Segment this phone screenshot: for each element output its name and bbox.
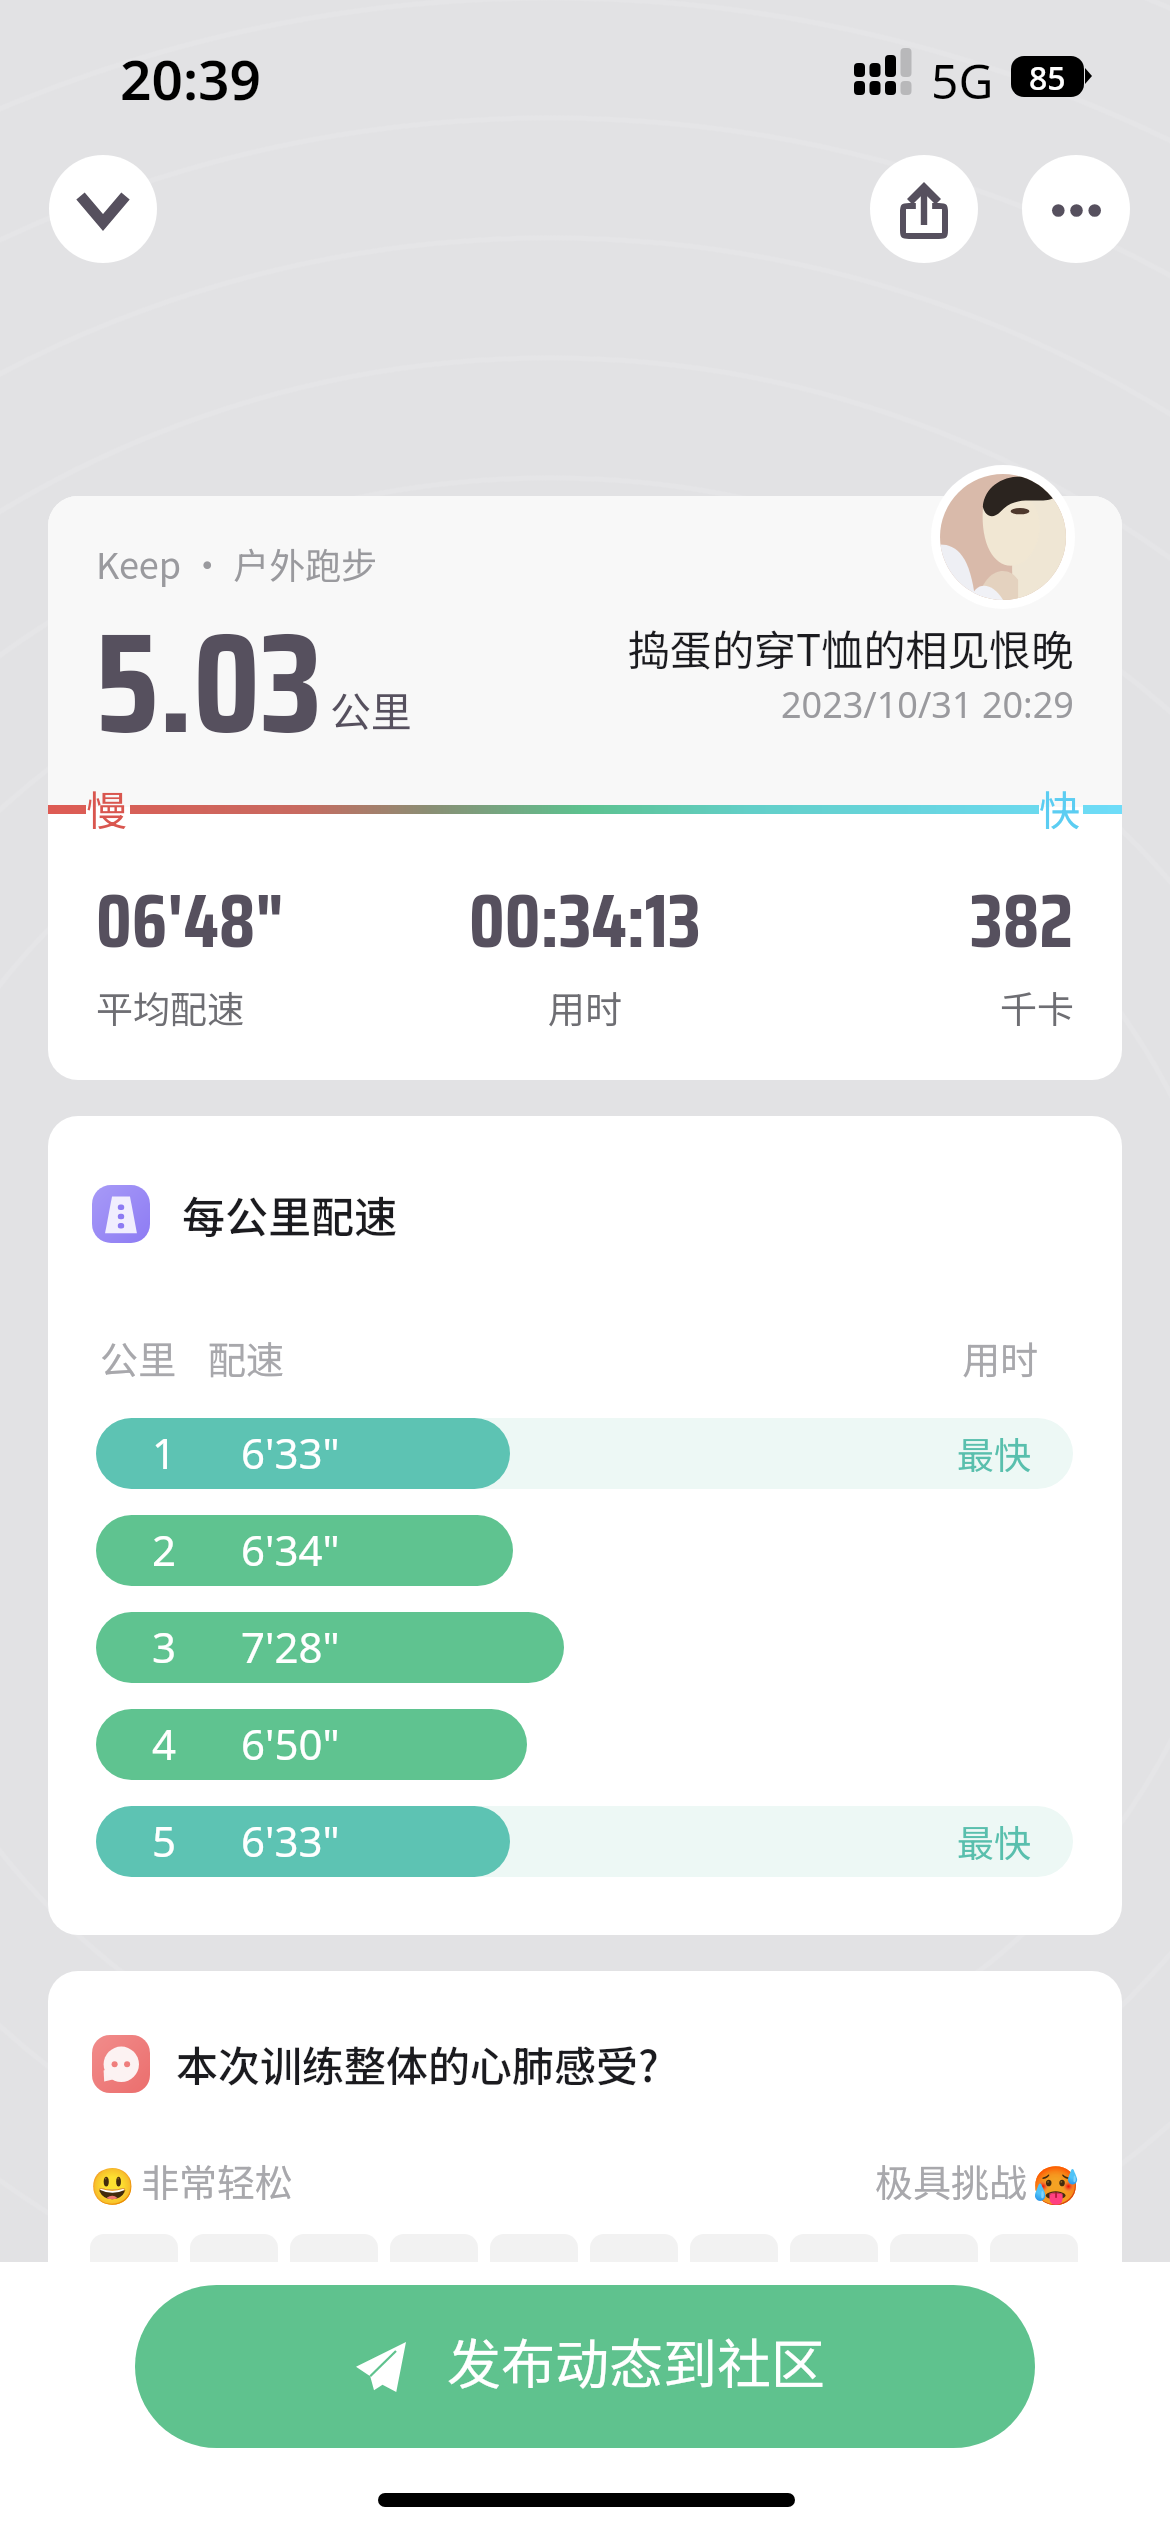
staticText: 快: [1039, 778, 1080, 837]
staticText: 2: [152, 1521, 177, 1578]
staticText: 7'28": [241, 1618, 340, 1675]
staticText: 捣蛋的穿T恤的相见恨晚: [628, 617, 1074, 678]
button[interactable]: [290, 2234, 378, 2294]
button[interactable]: More options: [1022, 155, 1130, 263]
staticText: 5.03: [95, 572, 322, 794]
staticText: 1: [152, 1424, 177, 1481]
button[interactable]: [690, 2234, 778, 2294]
button[interactable]: Collapse: [49, 155, 157, 263]
button[interactable]: [190, 2234, 278, 2294]
button[interactable]: 发布动态到社区: [135, 2285, 1035, 2448]
staticText: 配速: [208, 1330, 285, 1385]
staticText: 发布动态到社区: [447, 2321, 825, 2399]
staticText: 382: [970, 862, 1074, 980]
staticText: 慢: [86, 778, 127, 837]
staticText: 🥵: [1032, 2164, 1080, 2209]
staticText: 用时: [548, 980, 622, 1034]
staticText: Keep · 户外跑步: [96, 537, 378, 589]
staticText: 最快: [957, 1814, 1031, 1868]
button[interactable]: [590, 2234, 678, 2294]
staticText: 公里: [330, 679, 412, 738]
staticText: 千卡: [1000, 980, 1074, 1034]
button[interactable]: [890, 2234, 978, 2294]
staticText: 00:34:13: [469, 862, 701, 980]
staticText: 每公里配速: [182, 1183, 397, 1245]
staticText: 极具挑战: [875, 2153, 1028, 2208]
staticText: 最快: [957, 1426, 1031, 1480]
staticText: 2023/10/31 20:29: [781, 680, 1074, 729]
staticText: 😃: [90, 2166, 135, 2208]
staticText: 5: [152, 1812, 177, 1869]
staticText: 06'48": [96, 862, 284, 980]
staticText: 85: [1029, 56, 1066, 97]
button[interactable]: [490, 2234, 578, 2294]
button[interactable]: User avatar: [931, 465, 1075, 609]
staticText: 用时: [962, 1330, 1039, 1385]
staticText: 平均配速: [96, 980, 244, 1034]
button[interactable]: [790, 2234, 878, 2294]
staticText: 3: [152, 1618, 177, 1675]
staticText: 6'33": [241, 1812, 340, 1869]
staticText: 本次训练整体的心肺感受?: [176, 2033, 659, 2094]
staticText: 6'50": [241, 1715, 340, 1772]
button[interactable]: [90, 2234, 178, 2294]
staticText: 4: [152, 1715, 177, 1772]
staticText: 公里: [100, 1330, 177, 1385]
button[interactable]: [390, 2234, 478, 2294]
staticText: 20:39: [120, 41, 262, 116]
button[interactable]: [990, 2234, 1078, 2294]
button[interactable]: Share: [870, 155, 978, 263]
staticText: 6'34": [241, 1521, 340, 1578]
staticText: 非常轻松: [141, 2153, 294, 2208]
staticText: 6'33": [241, 1424, 340, 1481]
staticText: 5G: [931, 48, 994, 113]
